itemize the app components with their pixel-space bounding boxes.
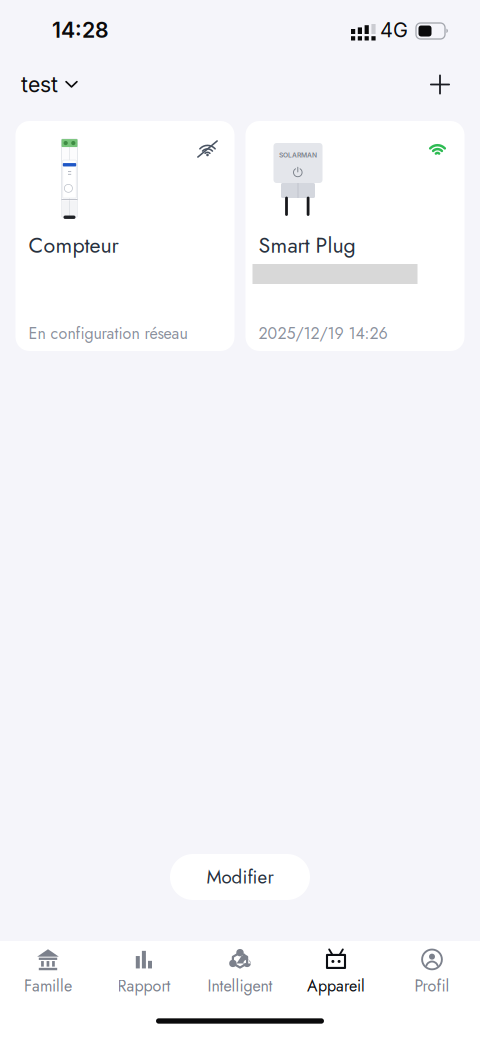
staticText: Profil [414, 974, 449, 997]
staticText: Compteur [28, 230, 118, 261]
button[interactable]: test [21, 63, 78, 106]
staticText: SOLARMAN [279, 151, 317, 159]
button[interactable]: Rapport [96, 937, 192, 1006]
staticText: 14:28 [52, 17, 109, 43]
button[interactable]: Profil [384, 937, 480, 1006]
button[interactable]: Appareil [288, 937, 384, 1006]
staticText: test [21, 72, 58, 97]
staticText: Appareil [307, 974, 365, 997]
button[interactable]: SOLARMAN [245, 121, 464, 351]
staticText: Smart Plug [258, 230, 355, 261]
staticText: 4G [380, 18, 408, 42]
staticText: En configuration réseau [28, 322, 187, 345]
staticText: Intelligent [207, 974, 272, 997]
staticText: Rapport [117, 974, 170, 997]
button[interactable]: Famille [0, 937, 96, 1006]
button[interactable]: Intelligent [192, 937, 288, 1006]
button[interactable]: Compteur [15, 121, 234, 351]
button[interactable]: Modifier [170, 854, 310, 900]
staticText: 2025/12/19 14:26 [258, 322, 387, 345]
button[interactable]: Add device [424, 68, 456, 100]
staticText: Famille [24, 974, 72, 997]
staticText: Modifier [206, 863, 273, 890]
